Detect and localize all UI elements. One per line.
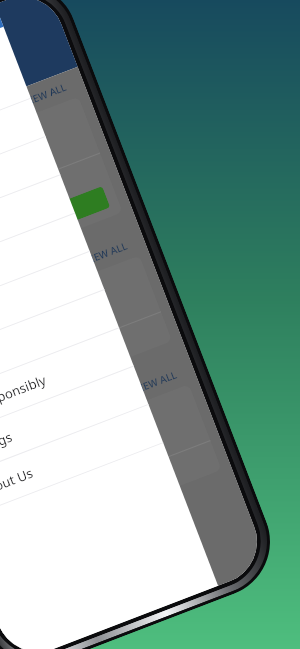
- button[interactable]: 27/11/2019, 21:00: [0, 96, 123, 303]
- staticText: About Us: [0, 463, 36, 500]
- staticText: Play Responsibly: [0, 371, 49, 424]
- button[interactable]: Free Tips: [0, 213, 90, 330]
- staticText: Settings: [0, 427, 15, 462]
- button[interactable]: Select |: [0, 186, 110, 291]
- button[interactable]: Statistics: [0, 290, 119, 407]
- button[interactable]: Settings: [0, 366, 149, 483]
- button[interactable]: 27/11/2019, 21:00: [0, 255, 172, 432]
- button[interactable]: VIEW ALL: [0, 0, 286, 649]
- button[interactable]: Events: [0, 137, 60, 254]
- staticText: VIEW ALL: [82, 238, 129, 268]
- button[interactable]: About Us: [0, 405, 163, 522]
- button[interactable]: VIEW ALL: [0, 67, 88, 191]
- button[interactable]: VIEW ALL: [0, 354, 198, 479]
- staticText: VIEW ALL: [21, 80, 68, 109]
- staticText: 27/11/2019, 21:00: [0, 453, 48, 491]
- button[interactable]: Home: [0, 27, 16, 139]
- button[interactable]: VIEW ALL: [0, 225, 149, 350]
- button[interactable]: Home: [0, 4, 218, 649]
- staticText: VIEW ALL: [132, 367, 179, 396]
- button[interactable]: VIP Tips: [0, 252, 104, 368]
- other: Add to betslip: [12, 224, 26, 238]
- button[interactable]: My Profile: [0, 60, 31, 177]
- button[interactable]: Today's Tips: [0, 175, 75, 292]
- button[interactable]: Tipster: [0, 99, 46, 215]
- staticText: Champions League: [0, 374, 26, 420]
- button[interactable]: 27/11/2019, 21:00: [0, 384, 222, 561]
- staticText: FC Porto: [0, 480, 47, 511]
- button[interactable]: Play Responsibly: [0, 328, 134, 445]
